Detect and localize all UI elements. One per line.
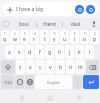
button[interactable]: 8	[70, 30, 79, 44]
staticText: f	[39, 49, 41, 56]
staticText: s	[18, 49, 21, 56]
staticText: 6	[54, 32, 56, 36]
button[interactable]: 6	[50, 30, 59, 44]
staticText: 2	[14, 32, 16, 36]
staticText: n	[69, 64, 73, 71]
staticText: 9	[84, 32, 86, 36]
staticText: u	[63, 36, 67, 43]
button[interactable]: g	[45, 45, 54, 59]
staticText: 7	[64, 32, 66, 36]
button[interactable]: Symbols	[1, 75, 14, 89]
button[interactable]: Emoji	[15, 75, 24, 89]
button[interactable]: l	[85, 45, 94, 59]
staticText: q	[3, 36, 7, 43]
button[interactable]: Emoji	[75, 5, 84, 14]
staticText: l	[89, 49, 91, 56]
button[interactable]: v	[46, 60, 55, 74]
button[interactable]: English	[35, 75, 72, 89]
staticText: deal	[71, 21, 80, 27]
staticText: 0	[94, 32, 96, 36]
button[interactable]: Search	[0, 18, 12, 30]
button[interactable]: 0	[90, 30, 99, 44]
button[interactable]: f	[35, 45, 44, 59]
button[interactable]: Voice input	[88, 18, 100, 30]
button[interactable]: Add attachment	[2, 2, 98, 16]
staticText: 4	[34, 32, 36, 36]
button[interactable]: b	[56, 60, 65, 74]
button[interactable]: 5	[40, 30, 49, 44]
button[interactable]: n	[66, 60, 75, 74]
staticText: boss	[19, 21, 29, 27]
staticText: w	[13, 36, 17, 43]
staticText: h	[58, 49, 62, 56]
staticText: .	[77, 79, 79, 86]
staticText: 3	[24, 32, 26, 36]
staticText: p	[93, 36, 97, 43]
staticText: a	[8, 49, 11, 56]
staticText: y	[53, 36, 56, 43]
button[interactable]: Shift	[1, 60, 15, 74]
staticText: z	[19, 64, 22, 71]
button[interactable]: 7	[60, 30, 69, 44]
staticText: o	[83, 36, 87, 43]
button[interactable]: friend	[37, 18, 62, 30]
button[interactable]: k	[75, 45, 84, 59]
button[interactable]: Enter	[83, 75, 99, 89]
staticText: ?123	[4, 80, 12, 85]
staticText: friend	[43, 21, 56, 27]
button[interactable]: 3	[20, 30, 29, 44]
staticText: I have a big	[16, 6, 44, 13]
button[interactable]: c	[36, 60, 45, 74]
button[interactable]: z	[16, 60, 25, 74]
button[interactable]: a	[5, 45, 14, 59]
staticText: d	[28, 49, 32, 56]
staticText: v	[49, 64, 52, 71]
staticText: e	[23, 36, 26, 43]
button[interactable]: 1	[1, 30, 9, 44]
button[interactable]: Send	[86, 5, 95, 14]
staticText: 1	[4, 32, 6, 36]
button[interactable]: 2	[10, 30, 19, 44]
staticText: English	[47, 80, 60, 85]
button[interactable]: 9	[80, 30, 89, 44]
staticText: i	[74, 36, 76, 43]
button[interactable]: Back	[72, 92, 84, 103]
staticText: c	[39, 64, 42, 71]
staticText: x	[29, 64, 32, 71]
button[interactable]: 4	[30, 30, 39, 44]
button[interactable]: x	[26, 60, 35, 74]
button[interactable]: Period	[73, 75, 82, 89]
staticText: m	[78, 64, 83, 71]
staticText: r	[33, 36, 36, 43]
button[interactable]: j	[65, 45, 74, 59]
staticText: j	[69, 49, 71, 56]
button[interactable]: d	[25, 45, 34, 59]
staticText: t	[44, 36, 46, 43]
button[interactable]: s	[15, 45, 24, 59]
staticText: 5	[44, 32, 46, 36]
button[interactable]: h	[55, 45, 64, 59]
button[interactable]: deal	[63, 18, 88, 30]
button[interactable]: Backspace	[86, 60, 99, 74]
button[interactable]: Add attachment	[5, 5, 14, 14]
button[interactable]: Recents	[16, 92, 28, 103]
staticText: 8	[74, 32, 76, 36]
button[interactable]: Language	[25, 75, 34, 89]
staticText: g	[48, 49, 52, 56]
staticText: b	[59, 64, 63, 71]
button[interactable]: boss	[12, 18, 36, 30]
button[interactable]: m	[76, 60, 85, 74]
button[interactable]: Home	[44, 92, 56, 103]
staticText: k	[78, 49, 81, 56]
